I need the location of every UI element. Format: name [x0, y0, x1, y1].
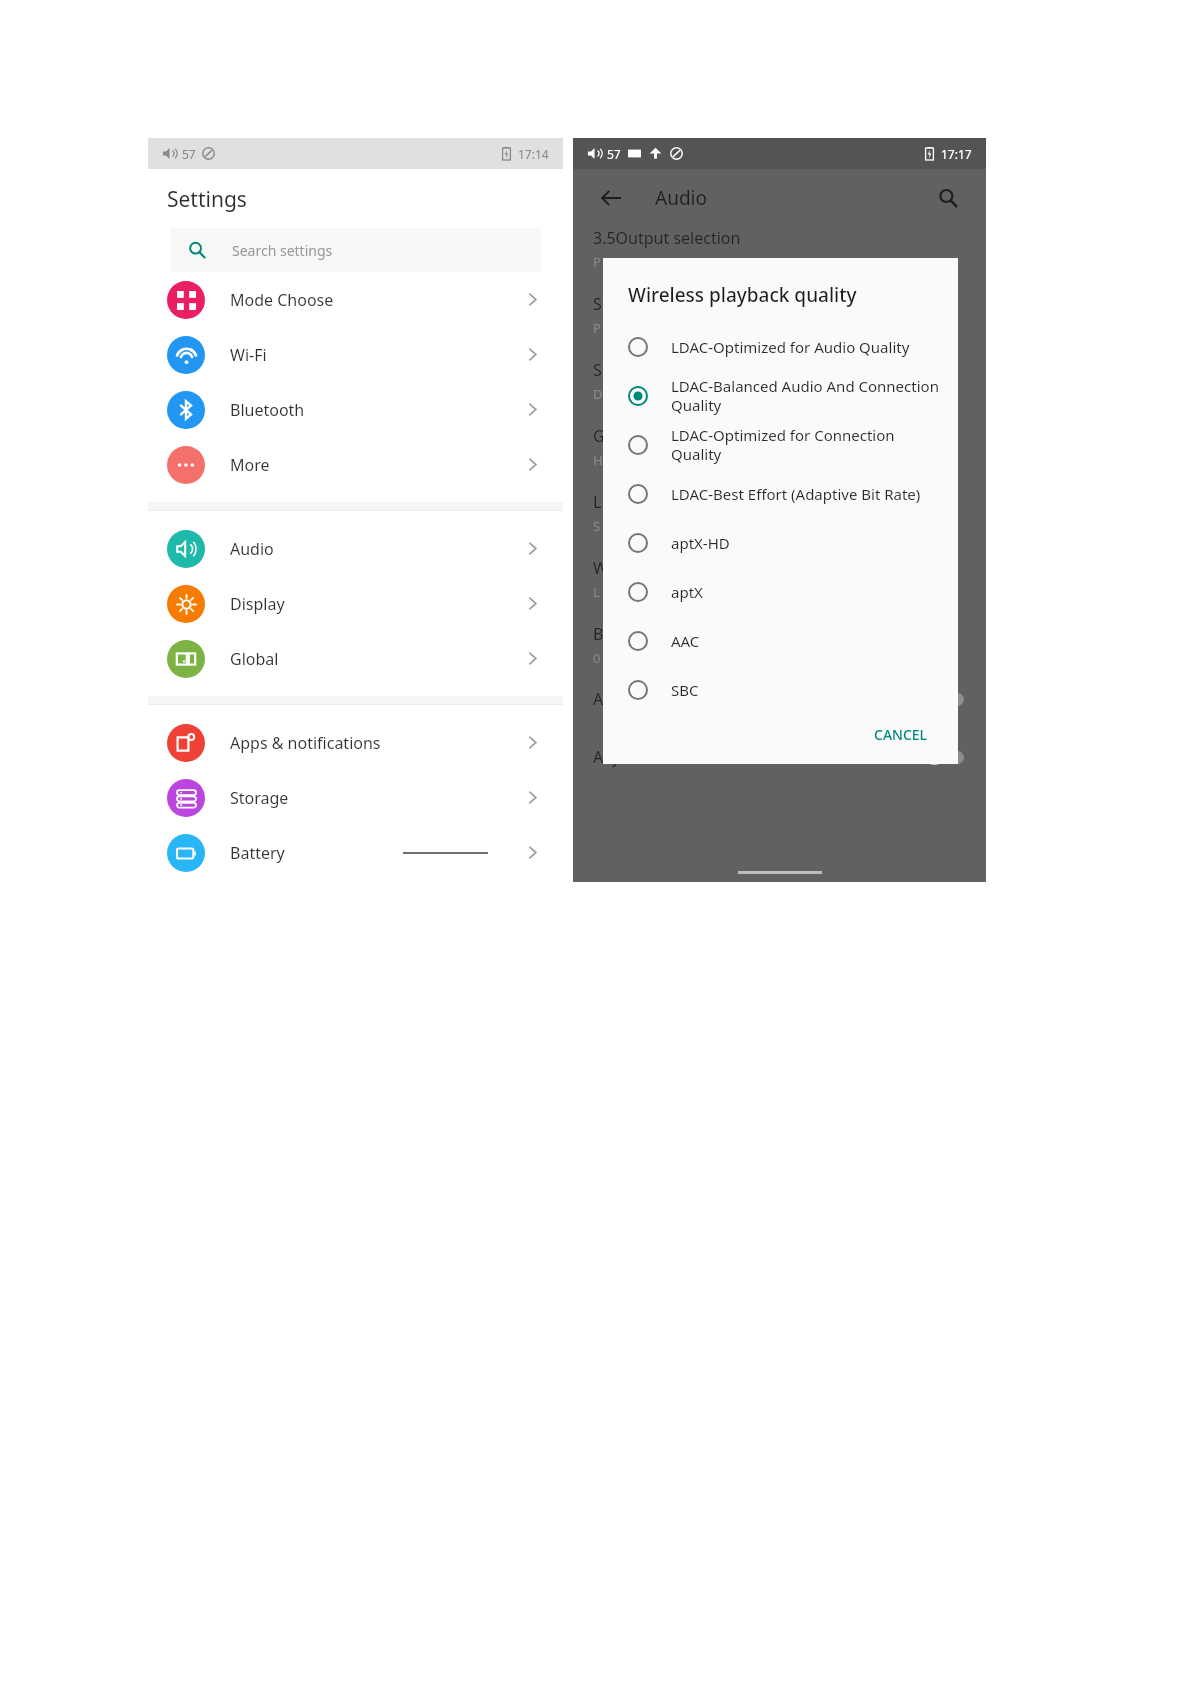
- staticText: Display: [230, 593, 285, 615]
- button[interactable]: LDAC-Balanced Audio And Connection Quali…: [603, 371, 958, 420]
- staticText: H: [593, 451, 603, 469]
- button[interactable]: Search settings: [170, 228, 541, 272]
- staticText: All To DSD: [593, 688, 670, 710]
- button[interactable]: Apps & notifications: [148, 715, 563, 770]
- staticText: L: [593, 491, 602, 513]
- button[interactable]: LDAC-Best Effort (Adaptive Bit Rate): [603, 469, 958, 518]
- staticText: S: [593, 517, 601, 535]
- staticText: SBC: [671, 680, 699, 700]
- staticText: S: [593, 293, 602, 315]
- staticText: Wi-Fi: [230, 344, 267, 366]
- staticText: P: [593, 319, 601, 337]
- button[interactable]: Audio: [148, 521, 563, 576]
- staticText: LDAC-Best Effort (Adaptive Bit Rate): [671, 484, 921, 504]
- staticText: 17:17: [941, 146, 972, 162]
- staticText: LDAC-Optimized for Connection Quality: [671, 425, 940, 464]
- staticText: Adjustable volume at LO: [593, 746, 777, 768]
- button[interactable]: Bluetooth: [148, 382, 563, 437]
- staticText: P: [593, 253, 601, 271]
- staticText: B: [593, 623, 604, 645]
- staticText: Wireless playback quality: [628, 282, 857, 308]
- button[interactable]: Wi-Fi: [148, 327, 563, 382]
- staticText: aptX-HD: [671, 533, 730, 553]
- staticText: Mode Choose: [230, 289, 334, 311]
- button[interactable]: Storage: [148, 770, 563, 825]
- staticText: LDAC-Optimized for Audio Quality: [671, 337, 910, 357]
- button[interactable]: aptX-HD: [603, 518, 958, 567]
- staticText: 17:14: [518, 146, 549, 162]
- staticText: Audio: [655, 185, 707, 211]
- button[interactable]: Mode Choose: [148, 272, 563, 327]
- staticText: 57: [607, 146, 621, 162]
- button[interactable]: aptX: [603, 567, 958, 616]
- button[interactable]: AAC: [603, 616, 958, 665]
- staticText: Global: [230, 648, 279, 670]
- staticText: Audio: [230, 538, 274, 560]
- button[interactable]: LDAC-Optimized for Audio Quality: [603, 322, 958, 371]
- staticText: Storage: [230, 787, 289, 809]
- button[interactable]: Adjustable volume at LO: [573, 739, 986, 775]
- staticText: 0: [593, 649, 601, 667]
- staticText: CANCEL: [874, 725, 928, 744]
- staticText: Battery: [230, 842, 285, 864]
- staticText: 3.5Output selection: [593, 227, 741, 249]
- staticText: aptX: [671, 582, 703, 602]
- button[interactable]: Global: [148, 631, 563, 686]
- staticText: G: [593, 425, 605, 447]
- button[interactable]: All To DSD: [573, 681, 986, 717]
- staticText: Search settings: [232, 241, 333, 260]
- staticText: D: [593, 385, 603, 403]
- staticText: L: [593, 583, 600, 601]
- staticText: AAC: [671, 631, 700, 651]
- staticText: Settings: [167, 185, 247, 214]
- staticText: W: [593, 557, 608, 579]
- button[interactable]: CANCEL: [866, 719, 936, 750]
- staticText: 57: [182, 146, 196, 162]
- button[interactable]: Display: [148, 576, 563, 631]
- staticText: S: [593, 359, 602, 381]
- button[interactable]: Back: [593, 180, 629, 216]
- button[interactable]: Battery: [148, 825, 563, 880]
- staticText: More: [230, 454, 270, 476]
- button[interactable]: Search: [930, 180, 966, 216]
- button[interactable]: LDAC-Optimized for Connection Quality: [603, 420, 958, 469]
- staticText: LDAC-Balanced Audio And Connection Quali…: [671, 376, 940, 415]
- staticText: Bluetooth: [230, 399, 305, 421]
- staticText: Apps & notifications: [230, 732, 381, 754]
- button[interactable]: SBC: [603, 665, 958, 714]
- button[interactable]: More: [148, 437, 563, 492]
